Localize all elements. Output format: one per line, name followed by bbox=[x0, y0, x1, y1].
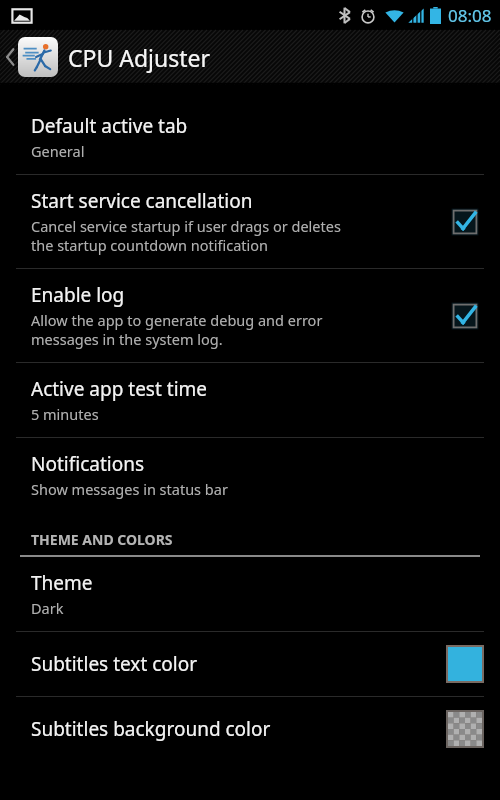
staticText: Show messages in status bar bbox=[31, 479, 228, 499]
staticText: Subtitles background color bbox=[31, 716, 271, 742]
staticText: 08:08 bbox=[448, 4, 492, 27]
staticText: 5 minutes bbox=[31, 404, 99, 424]
staticText: General bbox=[31, 141, 85, 161]
button[interactable]: Pick subtitles text color bbox=[446, 645, 484, 683]
staticText: CPU Adjuster bbox=[68, 42, 211, 73]
button[interactable]: Subtitles text color bbox=[0, 632, 500, 696]
button[interactable]: Toggle setting bbox=[446, 297, 484, 335]
button[interactable]: Toggle setting bbox=[446, 203, 484, 241]
staticText: Cancel service startup if user drags or … bbox=[31, 216, 341, 255]
staticText: Notifications bbox=[31, 451, 145, 477]
button[interactable]: Default active tab bbox=[0, 100, 500, 174]
staticText: Theme bbox=[31, 570, 93, 596]
button[interactable]: Theme bbox=[0, 557, 500, 631]
staticText: Start service cancellation bbox=[31, 188, 253, 214]
button[interactable]: Enable log bbox=[0, 269, 500, 362]
button[interactable]: Notifications bbox=[0, 438, 500, 512]
staticText: Subtitles text color bbox=[31, 651, 198, 677]
staticText: Allow the app to generate debug and erro… bbox=[31, 310, 323, 349]
staticText: Default active tab bbox=[31, 113, 188, 139]
staticText: Enable log bbox=[31, 282, 125, 308]
button[interactable]: Active app test time bbox=[0, 363, 500, 437]
staticText: THEME AND COLORS bbox=[31, 530, 173, 549]
button[interactable]: Start service cancellation bbox=[0, 175, 500, 268]
button[interactable]: Navigate up bbox=[0, 30, 500, 84]
button[interactable]: Subtitles background color bbox=[0, 697, 500, 761]
other: Navigate up bbox=[4, 44, 16, 70]
button[interactable]: Pick subtitles background color bbox=[446, 710, 484, 748]
staticText: Dark bbox=[31, 598, 64, 618]
staticText: Active app test time bbox=[31, 376, 208, 402]
